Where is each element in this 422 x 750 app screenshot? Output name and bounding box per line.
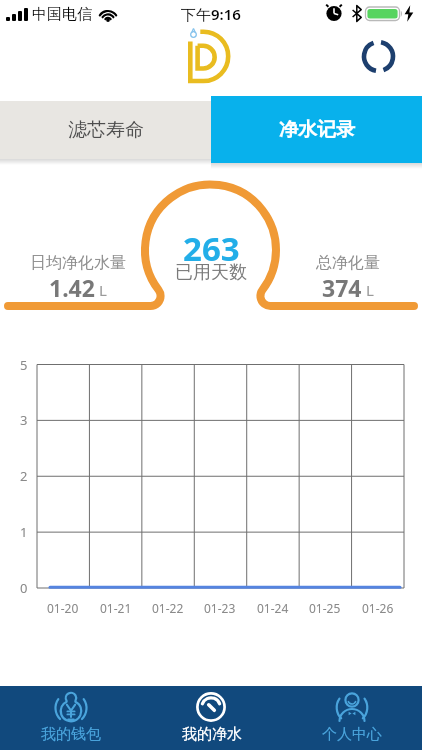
staticText: 01-22 [152, 600, 184, 616]
staticText: 263 [183, 226, 240, 271]
staticText: L [95, 280, 107, 300]
button[interactable]: 个人中心 [281, 686, 422, 750]
staticText: 5 [20, 356, 28, 374]
staticText: 1.42 [49, 272, 95, 303]
staticText: 0 [20, 579, 28, 597]
staticText: 01-26 [362, 600, 394, 616]
staticText: 2 [20, 467, 28, 485]
staticText: 374 [322, 272, 362, 303]
staticText: 总净化量 [316, 253, 380, 273]
staticText: 滤芯寿命 [68, 118, 144, 142]
staticText: 净水记录 [279, 118, 355, 142]
staticText: 我的钱包 [41, 725, 101, 744]
staticText: 我的净水 [182, 725, 242, 744]
staticText: 01-25 [309, 600, 341, 616]
staticText: L [362, 280, 374, 300]
button[interactable]: 滤芯寿命 [0, 101, 211, 159]
staticText: 3 [20, 411, 28, 429]
staticText: 日均净化水量 [30, 253, 126, 273]
staticText: 1 [20, 523, 28, 541]
staticText: 01-20 [47, 600, 79, 616]
staticText: 中国电信 [32, 5, 92, 24]
button[interactable]: 我的净水 [141, 686, 282, 750]
staticText: 01-24 [257, 600, 289, 616]
staticText: 下午9:16 [181, 4, 241, 24]
staticText: 已用天数 [175, 261, 247, 284]
button[interactable]: 我的钱包 [0, 686, 141, 750]
staticText: 01-21 [100, 600, 132, 616]
staticText: 个人中心 [322, 725, 382, 744]
button[interactable] [356, 34, 401, 79]
staticText: 01-23 [204, 600, 236, 616]
button[interactable]: 净水记录 [211, 96, 422, 163]
